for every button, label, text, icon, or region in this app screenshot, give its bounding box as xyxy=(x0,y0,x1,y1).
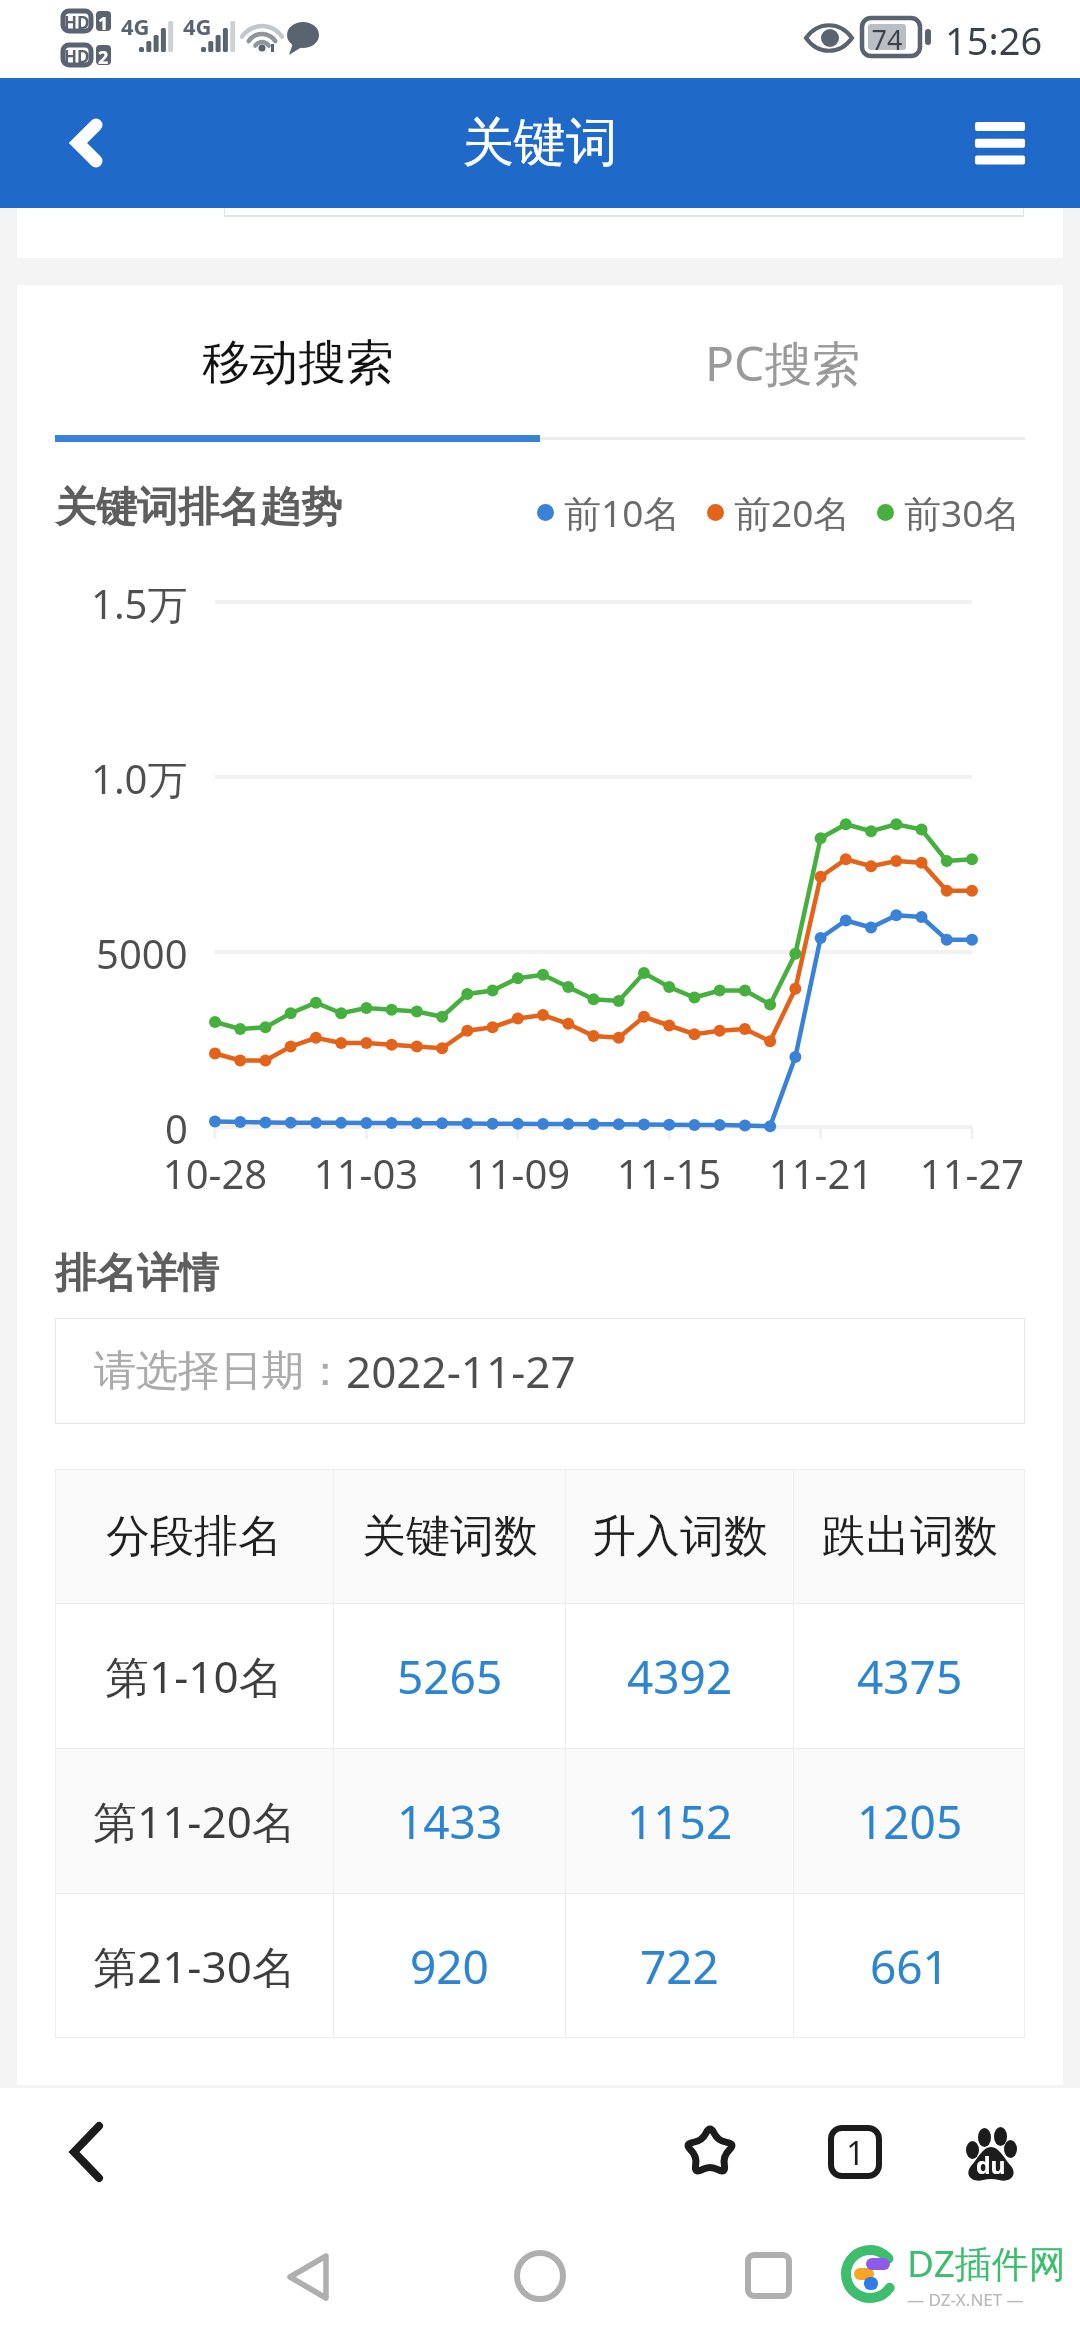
staticText: 前20名 xyxy=(734,487,851,538)
staticText: 前30名 xyxy=(904,487,1021,538)
staticText: 升入词数 xyxy=(592,1509,768,1564)
staticText: 11-21 xyxy=(746,1146,896,1200)
staticText: 5000 xyxy=(96,926,188,980)
staticText: 1 xyxy=(846,2130,865,2175)
staticText: 5265 xyxy=(397,1645,503,1708)
staticText: 跌出词数 xyxy=(822,1509,998,1564)
staticText: 11-09 xyxy=(443,1146,593,1200)
staticText: 10-28 xyxy=(140,1146,290,1200)
staticText: 11-03 xyxy=(291,1146,441,1200)
staticText: 920 xyxy=(410,1935,489,1998)
staticText: 关键词排名趋势 xyxy=(55,482,342,534)
staticText: 11-27 xyxy=(897,1146,1047,1200)
staticText: 15:26 xyxy=(945,14,1043,66)
staticText: 74 xyxy=(868,21,906,58)
button[interactable]: PC搜索 xyxy=(540,318,1025,408)
staticText: 722 xyxy=(640,1935,719,1998)
staticText: 1152 xyxy=(627,1790,733,1853)
staticText: HD xyxy=(64,45,90,65)
staticText: 4G xyxy=(121,11,150,41)
button[interactable]: Bookmark xyxy=(655,2100,765,2203)
button[interactable]: Tabs xyxy=(800,2100,910,2203)
staticText: 分段排名 xyxy=(106,1509,282,1564)
staticText: 1205 xyxy=(857,1790,963,1853)
button[interactable]: Menu xyxy=(935,78,1065,208)
button[interactable]: 请选择日期： xyxy=(55,1318,1025,1424)
staticText: 第21-30名 xyxy=(93,1936,296,1996)
staticText: HD xyxy=(64,11,90,31)
staticText: 关键词 xyxy=(462,110,618,176)
staticText: du xyxy=(976,2149,1006,2180)
staticText: 移动搜索 xyxy=(202,333,394,393)
staticText: 2 xyxy=(98,45,109,65)
staticText: 1.0万 xyxy=(91,751,188,806)
staticText: 第1-10名 xyxy=(105,1646,283,1706)
button[interactable]: Baidu home xyxy=(936,2101,1046,2204)
staticText: 4G xyxy=(183,11,212,41)
staticText: 1433 xyxy=(397,1790,503,1853)
staticText: DZ插件网 xyxy=(907,2237,1066,2288)
staticText: 0 xyxy=(165,1101,188,1155)
staticText: 第11-20名 xyxy=(93,1791,296,1851)
staticText: 661 xyxy=(870,1935,949,1998)
staticText: — DZ-X.NET — xyxy=(907,2288,1024,2311)
staticText: 2022-11-27 xyxy=(346,1341,576,1401)
staticText: 请选择日期： xyxy=(94,1345,346,1398)
button[interactable]: Back xyxy=(31,2100,141,2203)
button[interactable]: Back xyxy=(12,78,162,208)
staticText: 11-15 xyxy=(594,1146,744,1200)
staticText: 1.5万 xyxy=(91,576,188,631)
staticText: 关键词数 xyxy=(362,1509,538,1564)
button[interactable]: 移动搜索 xyxy=(55,318,540,408)
staticText: 排名详情 xyxy=(55,1248,219,1300)
staticText: PC搜索 xyxy=(705,330,861,396)
staticText: 4375 xyxy=(857,1645,963,1708)
staticText: 1 xyxy=(98,11,109,31)
staticText: 4392 xyxy=(627,1645,733,1708)
staticText: 前10名 xyxy=(564,487,681,538)
